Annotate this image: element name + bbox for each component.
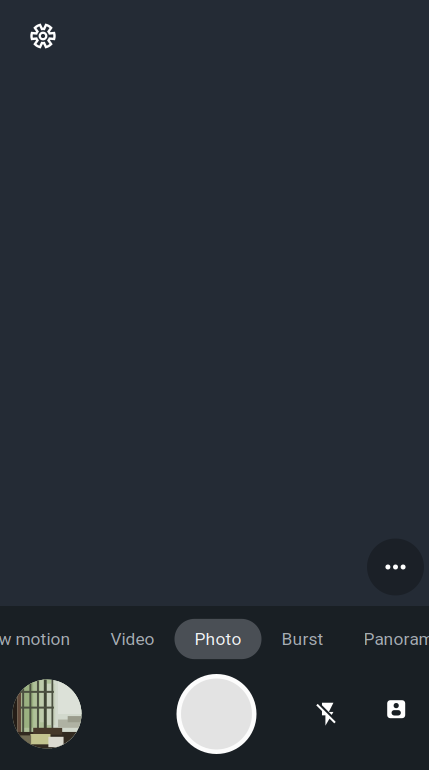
button[interactable]: Slow motion bbox=[0, 619, 90, 659]
button[interactable]: Photo bbox=[174, 619, 261, 659]
button[interactable]: Take photo bbox=[176, 674, 256, 754]
button[interactable]: Flash off bbox=[306, 692, 350, 736]
button[interactable]: Settings bbox=[21, 14, 65, 58]
staticText: Photo bbox=[194, 629, 241, 649]
button[interactable]: Switch camera bbox=[374, 687, 418, 731]
button[interactable]: Burst bbox=[261, 619, 343, 659]
staticText: Burst bbox=[281, 629, 323, 649]
button[interactable]: Gallery bbox=[12, 679, 81, 748]
button[interactable]: Panorama bbox=[343, 619, 429, 659]
staticText: Panorama bbox=[363, 629, 429, 649]
staticText: Video bbox=[110, 629, 154, 649]
button[interactable]: Video bbox=[90, 619, 174, 659]
button[interactable]: More options bbox=[367, 538, 424, 595]
staticText: Slow motion bbox=[0, 629, 70, 649]
